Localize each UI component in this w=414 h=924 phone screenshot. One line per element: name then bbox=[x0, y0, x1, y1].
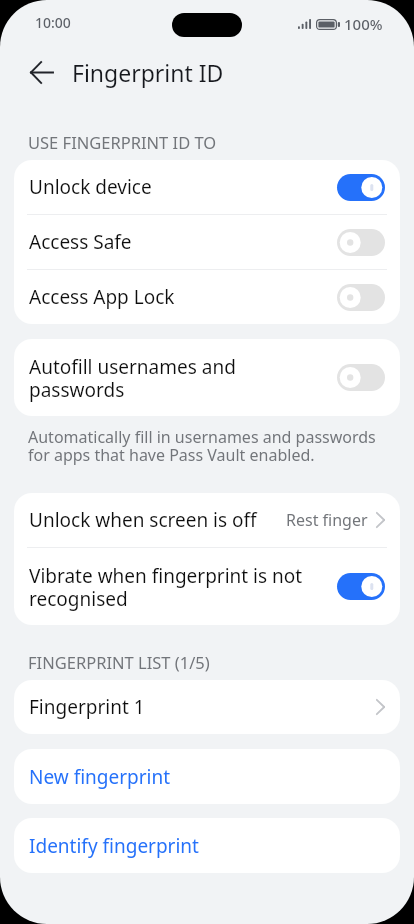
button[interactable]: New fingerprint bbox=[14, 749, 400, 804]
staticText: FINGERPRINT LIST (1/5) bbox=[28, 651, 210, 673]
staticText: 100% bbox=[344, 14, 383, 34]
staticText: Vibrate when fingerprint is not recognis… bbox=[29, 563, 323, 611]
staticText: Identify fingerprint bbox=[29, 833, 199, 859]
staticText: USE FINGERPRINT ID TO bbox=[28, 131, 217, 153]
staticText: Autofill usernames and passwords bbox=[29, 354, 323, 402]
staticText: Access App Lock bbox=[29, 284, 323, 310]
staticText: Rest finger bbox=[286, 509, 368, 531]
button[interactable]: Vibrate when fingerprint is not recognis… bbox=[14, 548, 400, 625]
button[interactable]: Identify fingerprint bbox=[14, 818, 400, 873]
staticText: Unlock when screen is off bbox=[29, 507, 286, 533]
button[interactable]: Unlock when screen is off bbox=[14, 493, 400, 547]
staticText: 10:00 bbox=[35, 13, 71, 32]
staticText: Access Safe bbox=[29, 229, 323, 255]
staticText: New fingerprint bbox=[29, 764, 171, 790]
staticText: Fingerprint 1 bbox=[29, 694, 376, 720]
button[interactable]: Back bbox=[19, 50, 64, 95]
staticText: Fingerprint ID bbox=[72, 57, 224, 88]
button[interactable]: Autofill usernames and passwords bbox=[14, 339, 400, 416]
button[interactable]: Fingerprint 1 bbox=[14, 680, 400, 734]
button[interactable]: Unlock device bbox=[14, 160, 400, 214]
staticText: Unlock device bbox=[29, 174, 323, 200]
staticText: Automatically fill in usernames and pass… bbox=[28, 426, 386, 466]
button[interactable]: Access Safe bbox=[14, 215, 400, 269]
button[interactable]: Access App Lock bbox=[14, 270, 400, 324]
